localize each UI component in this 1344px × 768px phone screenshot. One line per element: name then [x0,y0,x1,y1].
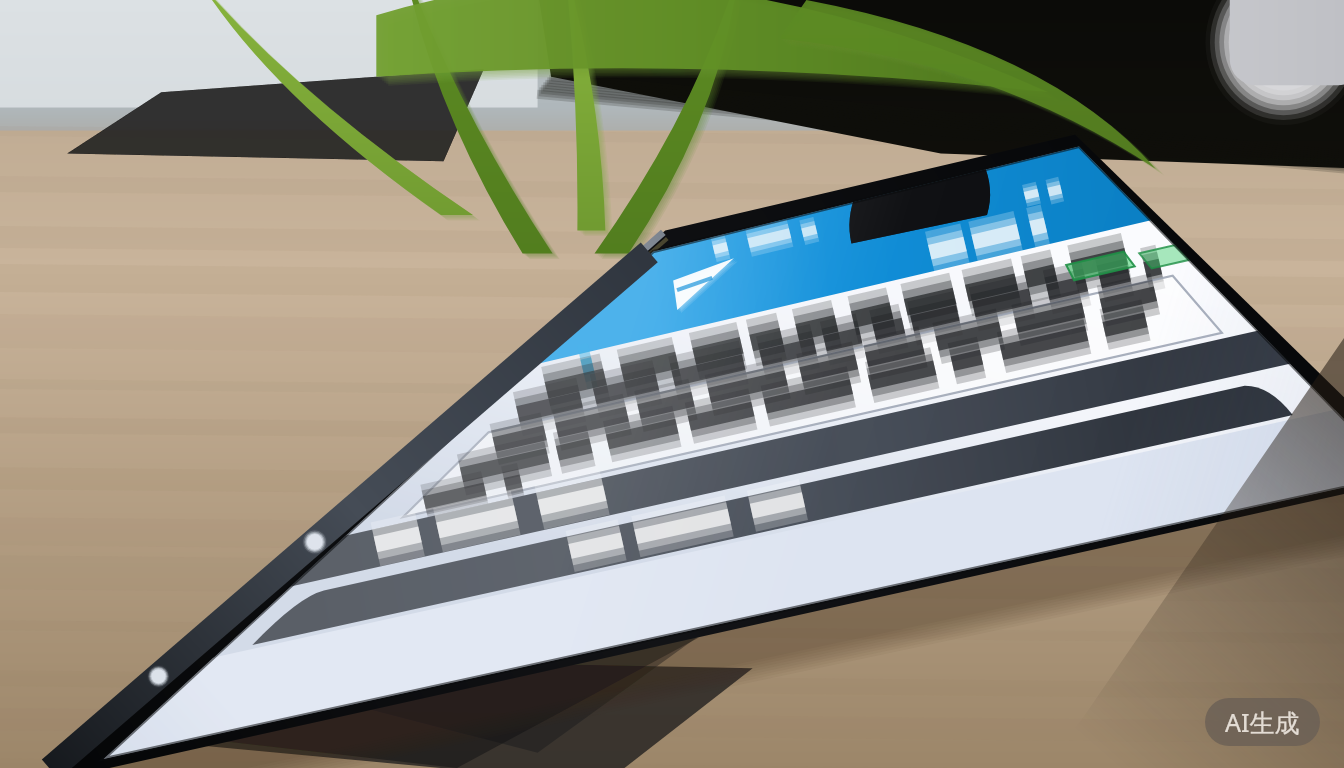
button[interactable]: Send [690,186,764,232]
button[interactable] [930,212,1190,266]
button[interactable] [330,262,1210,382]
staticText: AI生成 [1225,705,1300,739]
button[interactable] [560,438,1100,532]
button[interactable] [250,372,1210,468]
button[interactable]: AI生成 [1205,698,1320,746]
